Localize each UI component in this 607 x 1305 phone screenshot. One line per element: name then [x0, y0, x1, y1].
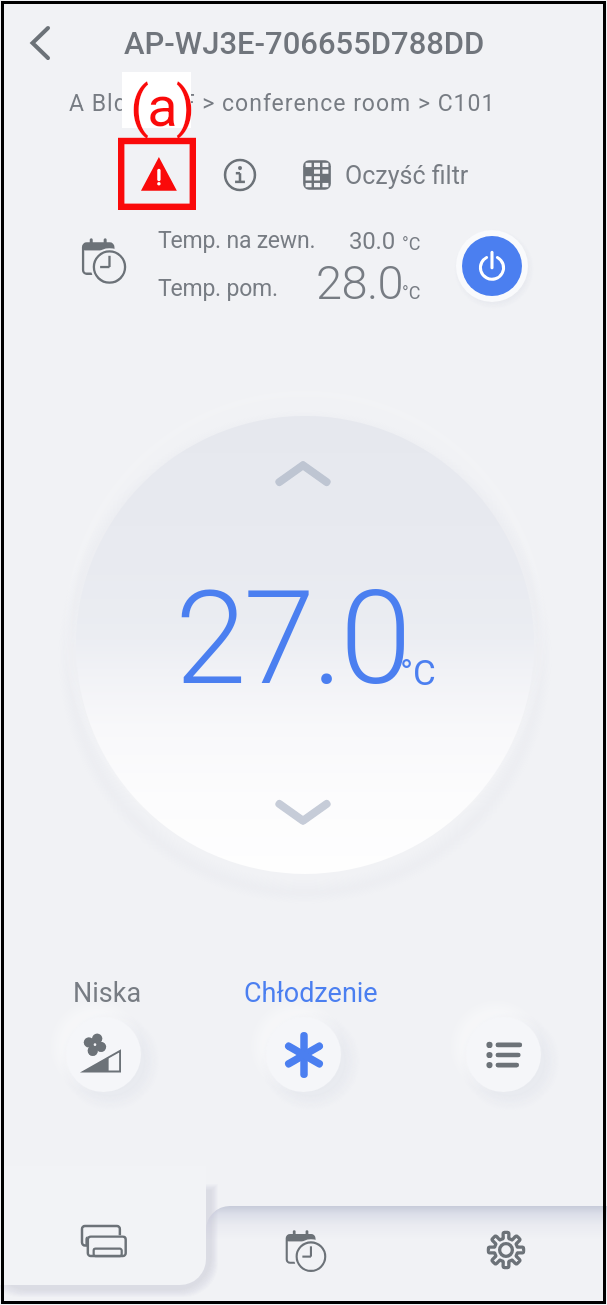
staticText: Oczyść filtr	[345, 161, 469, 190]
button[interactable]: Oczyść filtr	[300, 150, 469, 200]
staticText: 27.0	[175, 563, 409, 714]
staticText: Niska	[73, 977, 142, 1009]
button[interactable]: More options	[466, 1017, 541, 1092]
button[interactable]: Schedule	[205, 1206, 405, 1305]
button[interactable]: Power	[452, 226, 532, 306]
button[interactable]: Fan speed	[66, 1017, 141, 1092]
staticText: Temp. pom.	[158, 275, 278, 302]
staticText: °C	[400, 653, 436, 694]
button[interactable]: Cooling mode	[266, 1017, 341, 1092]
button[interactable]: Back	[15, 18, 65, 68]
staticText: (a)	[130, 74, 194, 140]
button[interactable]: Warning	[135, 152, 181, 198]
button[interactable]: Information	[217, 152, 263, 198]
button[interactable]: Increase temperature	[272, 452, 334, 496]
staticText: °C	[402, 282, 421, 303]
staticText: °C	[402, 233, 421, 254]
staticText: 28.0	[316, 255, 404, 310]
staticText: A Bldg > 1F > conference room > C101	[69, 90, 496, 117]
button[interactable]: Settings	[405, 1206, 607, 1305]
staticText: Chłodzenie	[244, 977, 378, 1009]
staticText: Temp. na zewn.	[158, 227, 316, 254]
staticText: 30.0	[349, 227, 395, 255]
button[interactable]: Devices	[0, 1196, 205, 1305]
staticText: AP-WJ3E-706655D788DD	[124, 25, 485, 61]
button[interactable]: Decrease temperature	[272, 790, 334, 834]
